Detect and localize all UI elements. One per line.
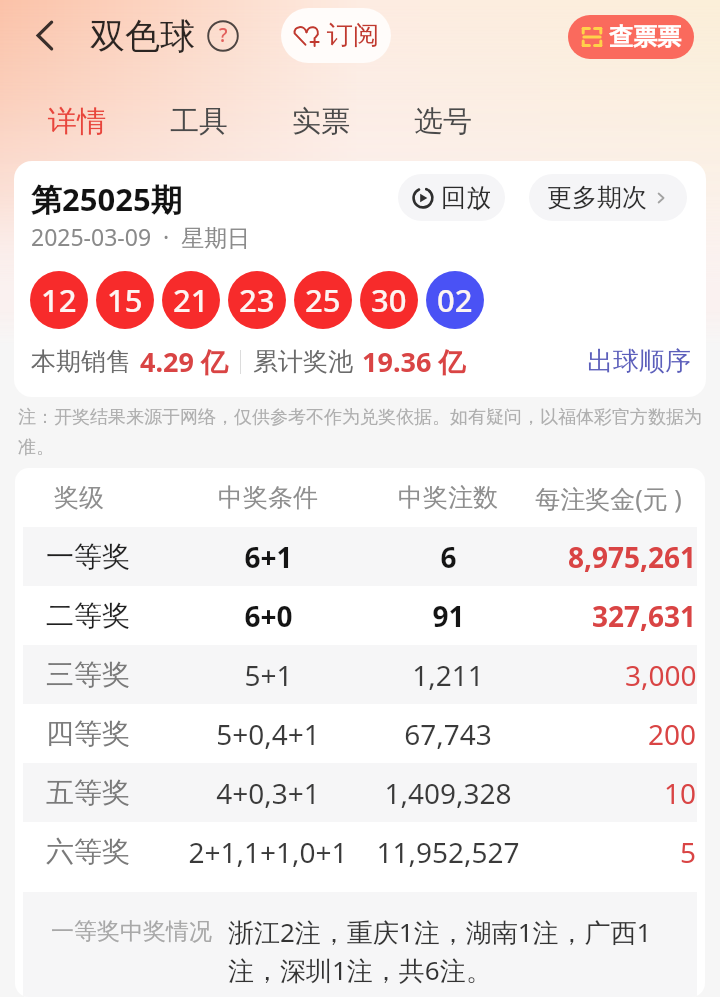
button[interactable]: 一等奖 xyxy=(23,527,697,586)
staticText: 91 xyxy=(432,597,465,635)
staticText: 2025-03-09 · 星期日 xyxy=(31,221,251,252)
staticText: 1,211 xyxy=(412,656,484,694)
button[interactable]: 六等奖 xyxy=(23,822,697,881)
staticText: 工具 xyxy=(170,103,228,140)
button[interactable]: 回放 xyxy=(398,174,505,221)
button[interactable]: 工具 xyxy=(154,84,244,159)
button[interactable]: 实票 xyxy=(276,84,366,159)
staticText: 10 xyxy=(664,774,697,812)
staticText: 选号 xyxy=(414,103,472,140)
button[interactable]: 选号 xyxy=(398,84,488,159)
staticText: 6+1 xyxy=(244,538,293,576)
button[interactable]: 四等奖 xyxy=(23,704,697,763)
staticText: 4.29 亿 xyxy=(140,343,228,380)
staticText: 本期销售 xyxy=(31,346,131,377)
staticText: 12 xyxy=(41,279,77,321)
staticText: 一等奖中奖情况 xyxy=(51,917,212,946)
staticText: 奖级 xyxy=(54,482,104,513)
staticText: 二等奖 xyxy=(46,598,130,633)
staticText: 每注奖金(元 ) xyxy=(535,481,682,515)
staticText: ? xyxy=(219,22,228,48)
staticText: 三等奖 xyxy=(46,657,130,692)
staticText: 15 xyxy=(107,279,143,321)
staticText: 2+1,1+1,0+1 xyxy=(188,833,348,871)
staticText: 实票 xyxy=(292,103,350,140)
staticText: 5 xyxy=(680,833,697,871)
staticText: 25 xyxy=(305,279,341,321)
staticText: 更多期次 xyxy=(547,182,647,213)
staticText: 23 xyxy=(239,279,275,321)
staticText: 六等奖 xyxy=(46,834,130,869)
staticText: 6+0 xyxy=(244,597,293,635)
staticText: 327,631 xyxy=(592,597,697,635)
staticText: 双色球 xyxy=(90,14,195,58)
button[interactable]: 二等奖 xyxy=(23,586,697,645)
staticText: 详情 xyxy=(48,103,106,140)
staticText: 5+1 xyxy=(244,656,293,694)
staticText: 累计奖池 xyxy=(253,346,353,377)
staticText: 五等奖 xyxy=(46,775,130,810)
button[interactable]: 更多期次 xyxy=(529,174,687,221)
staticText: 21 xyxy=(173,279,209,321)
staticText: 浙江2注，重庆1注，湖南1注，广西1注，深圳1注，共6注。 xyxy=(228,914,681,987)
staticText: 一等奖 xyxy=(46,539,130,574)
staticText: 19.36 亿 xyxy=(362,343,466,380)
button[interactable]: 详情 xyxy=(32,84,122,159)
button[interactable]: 五等奖 xyxy=(23,763,697,822)
staticText: 30 xyxy=(371,279,407,321)
staticText: 中奖注数 xyxy=(398,482,498,513)
staticText: 注：开奖结果来源于网络，仅供参考不作为兑奖依据。如有疑问，以福体彩官方数据为准。 xyxy=(18,406,716,458)
button[interactable]: 出球顺序 xyxy=(587,345,691,378)
staticText: 200 xyxy=(648,715,697,753)
staticText: 02 xyxy=(437,279,473,321)
staticText: 回放 xyxy=(441,182,491,213)
staticText: 4+0,3+1 xyxy=(216,774,320,812)
staticText: 3,000 xyxy=(625,656,697,694)
staticText: 8,975,261 xyxy=(568,538,697,576)
button[interactable]: 查票票 xyxy=(568,15,694,59)
button[interactable]: 三等奖 xyxy=(23,645,697,704)
staticText: 1,409,328 xyxy=(384,774,512,812)
staticText: 5+0,4+1 xyxy=(216,715,320,753)
staticText: 第25025期 xyxy=(31,178,182,220)
staticText: 中奖条件 xyxy=(218,482,318,513)
button[interactable]: Back xyxy=(22,13,67,58)
staticText: 67,743 xyxy=(404,715,492,753)
staticText: 订阅 xyxy=(327,19,379,52)
staticText: 查票票 xyxy=(609,22,681,52)
staticText: 出球顺序 xyxy=(587,345,691,378)
staticText: 11,952,527 xyxy=(376,833,520,871)
button[interactable]: 订阅 xyxy=(281,8,391,63)
staticText: 6 xyxy=(440,538,457,576)
button[interactable]: Help xyxy=(205,18,241,54)
staticText: 四等奖 xyxy=(46,716,130,751)
